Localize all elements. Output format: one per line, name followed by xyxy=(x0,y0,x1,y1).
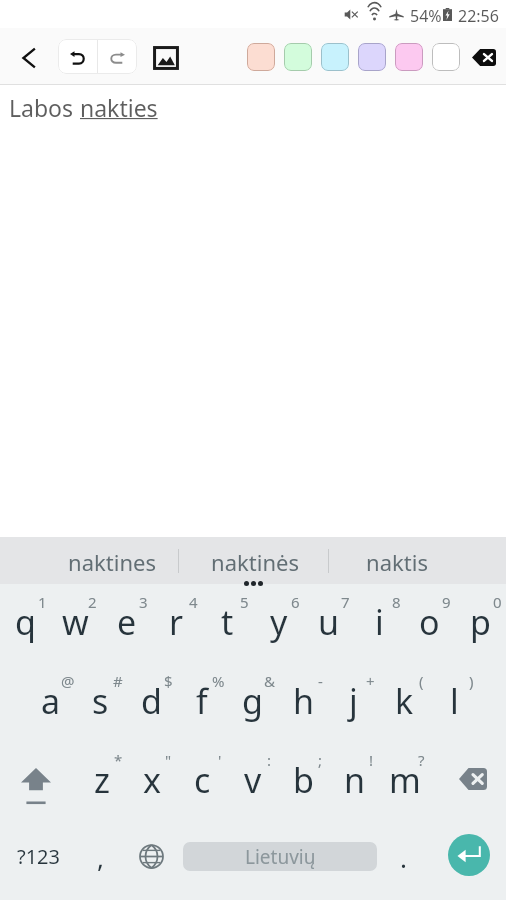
button[interactable]: Colour 1 xyxy=(247,43,275,71)
button[interactable]: ? xyxy=(379,742,430,821)
button[interactable]: Colour 5 xyxy=(395,43,423,71)
staticText: 54% xyxy=(410,5,442,27)
staticText: h xyxy=(293,678,315,724)
staticText: ?123 xyxy=(17,843,60,870)
button[interactable]: naktis xyxy=(329,537,506,584)
button[interactable]: 8 xyxy=(354,584,405,663)
staticText: 8 xyxy=(392,592,401,612)
staticText: v xyxy=(244,757,262,803)
staticText: $ xyxy=(164,671,173,691)
staticText: 2 xyxy=(88,592,97,612)
staticText: w xyxy=(62,599,89,645)
staticText: : xyxy=(267,750,272,770)
button[interactable]: Insert image xyxy=(146,40,186,76)
button[interactable]: Change keyboard language xyxy=(126,821,176,900)
staticText: c xyxy=(194,757,211,803)
button[interactable]: * xyxy=(76,742,127,821)
button[interactable]: Undo xyxy=(58,39,97,74)
button[interactable]: Colour 4 xyxy=(358,43,386,71)
button[interactable]: & xyxy=(227,663,278,742)
staticText: 9 xyxy=(442,592,451,612)
staticText: nakties xyxy=(80,92,158,123)
staticText: 6 xyxy=(291,592,300,612)
button[interactable]: 3 xyxy=(101,584,152,663)
staticText: 5 xyxy=(240,592,249,612)
button[interactable]: : xyxy=(227,742,278,821)
button[interactable]: - xyxy=(278,663,329,742)
staticText: m xyxy=(389,757,421,803)
staticText: 3 xyxy=(139,592,148,612)
staticText: 0 xyxy=(493,592,502,612)
button[interactable]: ) xyxy=(429,663,480,742)
button[interactable]: 1 xyxy=(0,584,51,663)
button[interactable]: , xyxy=(77,821,125,900)
button[interactable]: Lietuvių xyxy=(183,842,377,871)
staticText: @ xyxy=(61,671,75,691)
staticText: ' xyxy=(218,750,222,770)
staticText: 4 xyxy=(189,592,198,612)
staticText: * xyxy=(114,750,123,770)
staticText: j xyxy=(349,678,358,724)
staticText: d xyxy=(141,678,162,724)
staticText: r xyxy=(169,599,184,645)
staticText: l xyxy=(450,678,459,724)
staticText: z xyxy=(94,757,110,803)
staticText: o xyxy=(419,599,440,645)
staticText: ; xyxy=(318,750,323,770)
button[interactable]: Colour 6 xyxy=(432,43,460,71)
staticText: p xyxy=(470,599,491,645)
button[interactable]: 6 xyxy=(253,584,304,663)
button[interactable]: naktinės xyxy=(179,537,328,584)
staticText: x xyxy=(143,757,161,803)
staticText: + xyxy=(366,671,375,691)
button[interactable]: Redo xyxy=(98,39,137,74)
button[interactable]: ' xyxy=(177,742,228,821)
staticText: g xyxy=(242,678,263,724)
staticText: Lietuvių xyxy=(245,844,316,870)
button[interactable]: ! xyxy=(329,742,380,821)
staticText: " xyxy=(165,750,172,770)
button[interactable]: ?123 xyxy=(0,821,77,900)
staticText: ) xyxy=(469,671,474,691)
button[interactable]: $ xyxy=(126,663,177,742)
button[interactable]: @ xyxy=(25,663,76,742)
staticText: 7 xyxy=(341,592,350,612)
staticText: e xyxy=(117,599,137,645)
button[interactable]: naktines xyxy=(0,537,178,584)
button[interactable]: Enter xyxy=(448,834,490,876)
button[interactable]: 9 xyxy=(404,584,455,663)
button[interactable]: 0 xyxy=(455,584,506,663)
staticText: ( xyxy=(419,671,424,691)
button[interactable]: 7 xyxy=(303,584,354,663)
staticText: 22:56 xyxy=(458,5,499,27)
button[interactable]: Back xyxy=(11,40,47,76)
button[interactable]: ( xyxy=(379,663,430,742)
staticText: # xyxy=(113,671,123,691)
staticText: y xyxy=(270,599,288,645)
button[interactable]: . xyxy=(382,821,426,900)
button[interactable]: " xyxy=(126,742,177,821)
button[interactable]: 2 xyxy=(50,584,101,663)
staticText: - xyxy=(318,671,323,691)
button[interactable]: Erase xyxy=(466,42,502,72)
button[interactable]: # xyxy=(75,663,126,742)
staticText: & xyxy=(264,671,275,691)
button[interactable]: % xyxy=(176,663,227,742)
staticText: . xyxy=(400,840,407,875)
staticText: s xyxy=(92,678,109,724)
button[interactable]: ; xyxy=(278,742,329,821)
button[interactable]: 5 xyxy=(202,584,253,663)
staticText: naktis xyxy=(366,547,428,577)
button[interactable]: Shift xyxy=(0,742,76,821)
staticText: , xyxy=(97,840,104,875)
staticText: k xyxy=(395,678,414,724)
staticText: naktines xyxy=(68,547,156,577)
button[interactable]: Backspace xyxy=(430,742,506,821)
button[interactable]: Colour 2 xyxy=(284,43,312,71)
button[interactable]: + xyxy=(328,663,379,742)
button[interactable]: Colour 3 xyxy=(321,43,349,71)
staticText: q xyxy=(15,599,36,645)
staticText: n xyxy=(344,757,366,803)
button[interactable]: 4 xyxy=(151,584,202,663)
staticText: t xyxy=(221,599,234,645)
